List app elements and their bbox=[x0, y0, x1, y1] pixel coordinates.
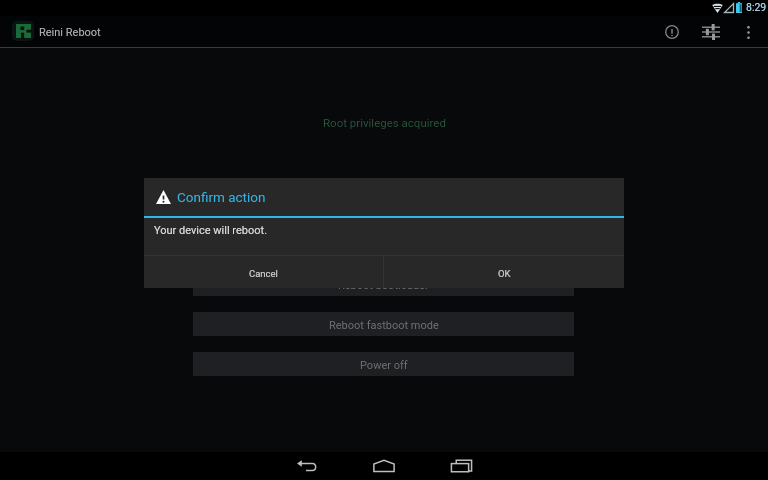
staticText: Root privileges acquired bbox=[323, 116, 446, 129]
button[interactable]: Power off bbox=[193, 352, 574, 376]
button[interactable]: Cancel bbox=[144, 256, 383, 288]
staticText: OK bbox=[498, 268, 511, 279]
staticText: Your device will reboot. bbox=[154, 224, 268, 237]
staticText: 8:29 bbox=[746, 1, 767, 13]
staticText: Confirm action bbox=[177, 189, 266, 205]
button[interactable]: OK bbox=[384, 256, 624, 288]
button[interactable]: Reboot fastboot mode bbox=[193, 312, 574, 336]
staticText: Reboot fastboot mode bbox=[329, 319, 439, 332]
button[interactable]: Reboot bootloader bbox=[193, 272, 574, 296]
button[interactable]: Reboot recovery bbox=[193, 232, 574, 256]
button[interactable]: Home bbox=[365, 452, 403, 480]
button[interactable]: Reboot bbox=[193, 192, 574, 216]
staticText: Reini Reboot bbox=[39, 26, 101, 39]
button[interactable]: Info bbox=[652, 16, 692, 48]
staticText: Reboot bootloader bbox=[338, 279, 429, 292]
button[interactable]: Back bbox=[288, 452, 326, 480]
button[interactable]: Recent apps bbox=[442, 452, 480, 480]
button[interactable]: Settings bbox=[691, 16, 731, 48]
button[interactable]: More options bbox=[728, 16, 768, 48]
staticText: Power off bbox=[360, 359, 408, 372]
staticText: Cancel bbox=[249, 268, 278, 279]
